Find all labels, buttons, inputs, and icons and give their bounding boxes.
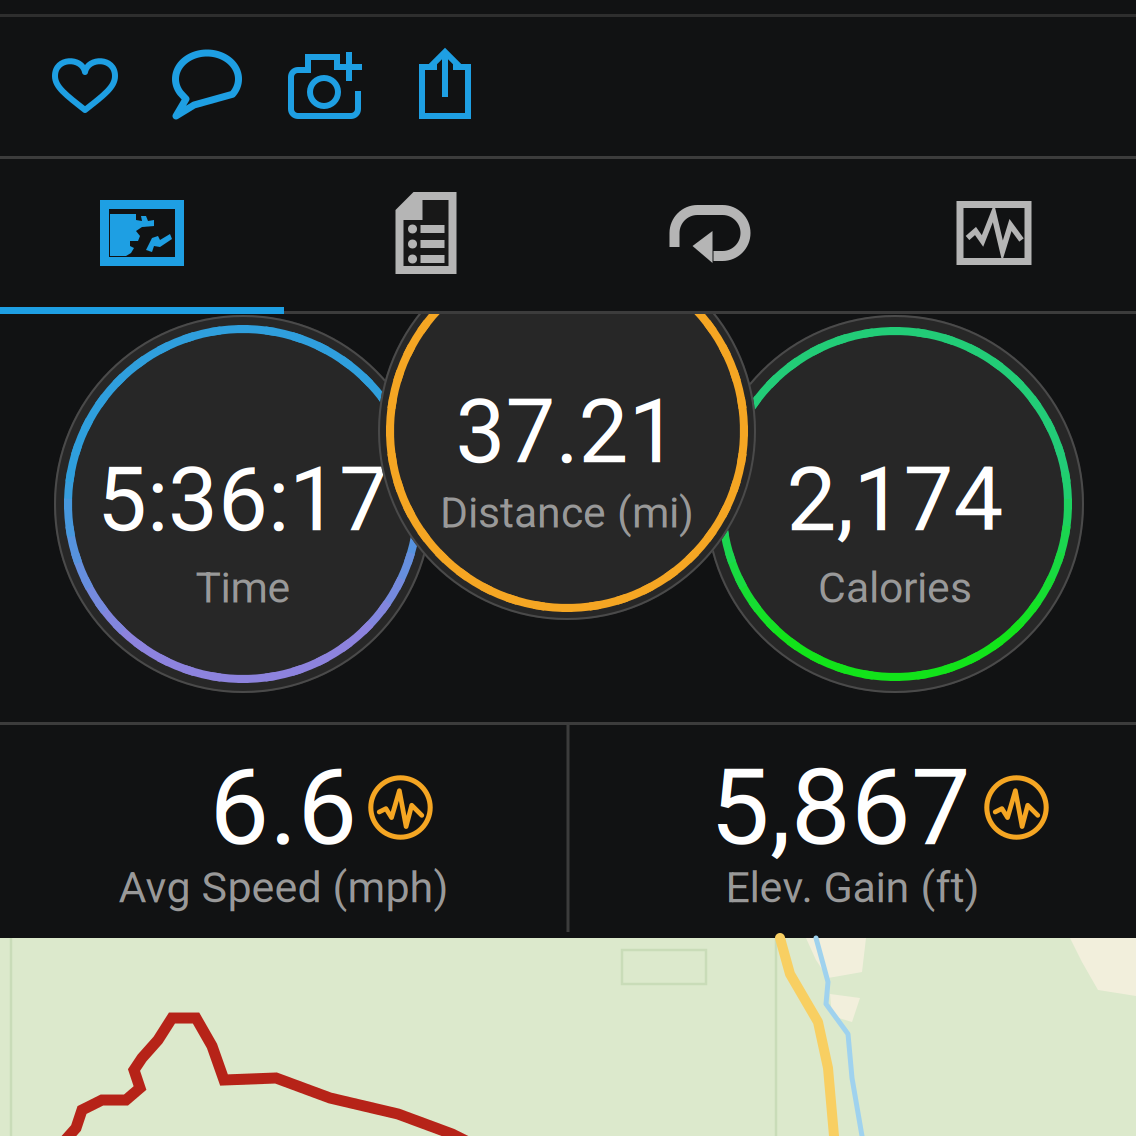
staticText: 6.6 — [209, 745, 357, 870]
staticText: Time — [195, 563, 290, 613]
button[interactable]: Share — [386, 13, 504, 155]
staticText: Avg Speed (mph) — [118, 862, 448, 913]
button[interactable]: Add photo — [267, 13, 385, 155]
staticText: Distance (mi) — [440, 488, 694, 538]
button[interactable]: Map — [0, 157, 284, 309]
staticText: 5:36:17 — [97, 448, 389, 552]
staticText: Calories — [818, 563, 972, 613]
staticText: 37.21 — [455, 380, 678, 484]
button[interactable]: Comment — [148, 13, 266, 155]
button[interactable]: Like — [26, 13, 144, 155]
staticText: 2,174 — [786, 448, 1003, 552]
staticText: 5,867 — [710, 745, 971, 870]
button[interactable]: Splits — [284, 157, 568, 309]
button[interactable]: Segments — [568, 157, 852, 309]
button[interactable]: Analysis — [852, 157, 1136, 309]
staticText: Elev. Gain (ft) — [725, 862, 979, 913]
